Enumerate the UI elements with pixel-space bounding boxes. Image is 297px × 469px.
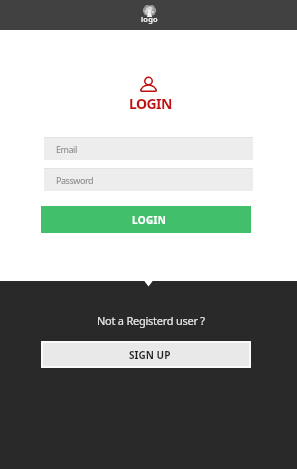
staticText: SIGN UP [129,348,171,362]
staticText: LOGIN [132,213,167,227]
staticText: Password [56,174,94,186]
staticText: Email [56,143,77,155]
button[interactable]: Password [44,169,253,191]
staticText: LOGIN [129,94,172,113]
button[interactable]: SIGN UP [43,343,249,366]
button[interactable]: Logo, home [136,0,162,30]
staticText: Not a Registerd user ? [97,313,205,328]
other: User [140,76,157,92]
button[interactable]: Email [44,138,253,160]
staticText: logo [141,14,158,24]
button[interactable]: LOGIN [41,206,251,233]
